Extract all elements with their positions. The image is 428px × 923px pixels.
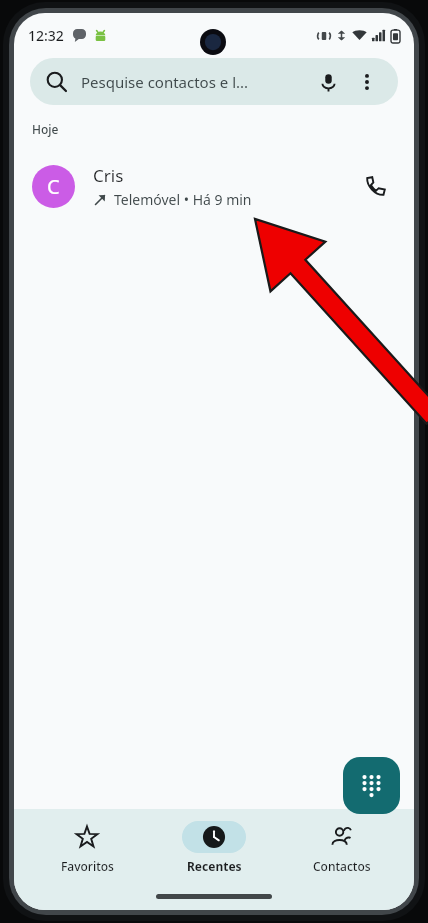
- staticText: Contactos: [313, 858, 371, 874]
- button[interactable]: Pesquise contactos e l...: [30, 58, 398, 105]
- button[interactable]: Mais opcoes: [352, 67, 382, 97]
- staticText: Cris: [93, 164, 124, 187]
- staticText: 12:32: [28, 26, 64, 45]
- button[interactable]: Ligar: [354, 164, 398, 208]
- staticText: Recentes: [187, 858, 242, 874]
- button[interactable]: Teclado de marcacao: [343, 757, 400, 814]
- button[interactable]: Favoritos: [32, 821, 142, 874]
- button[interactable]: Contactos: [287, 821, 397, 874]
- button[interactable]: Recentes: [159, 821, 269, 874]
- staticText: Pesquise contactos e l...: [81, 72, 313, 92]
- button[interactable]: C: [14, 153, 414, 219]
- button[interactable]: Pesquisa por voz: [313, 67, 343, 97]
- staticText: C: [47, 173, 60, 200]
- staticText: Favoritos: [61, 858, 114, 874]
- staticText: Telemóvel • Há 9 min: [114, 190, 252, 209]
- staticText: Hoje: [32, 121, 59, 137]
